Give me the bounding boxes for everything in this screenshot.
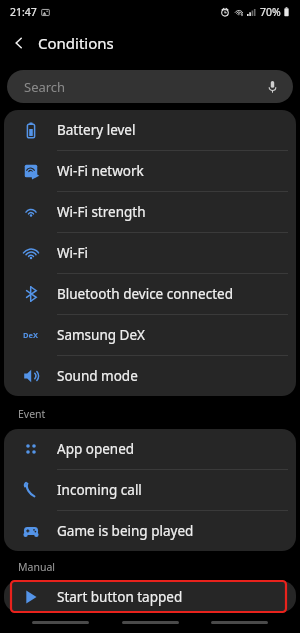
- staticText: Sound mode: [57, 367, 138, 385]
- button[interactable]: Navigation: [32, 621, 89, 624]
- button[interactable]: Navigation: [211, 621, 268, 624]
- staticText: Incoming call: [57, 481, 142, 499]
- button[interactable]: Wi-Fi strength: [4, 192, 296, 232]
- staticText: Bluetooth device connected: [57, 285, 233, 303]
- button[interactable]: Incoming call: [4, 470, 296, 510]
- staticText: Battery level: [57, 121, 136, 139]
- staticText: App opened: [57, 440, 135, 458]
- staticText: Game is being played: [57, 522, 194, 540]
- button[interactable]: Sound mode: [4, 356, 296, 396]
- button[interactable]: Search: [7, 70, 293, 103]
- button[interactable]: DeX: [4, 315, 296, 355]
- button[interactable]: Bluetooth device connected: [4, 274, 296, 314]
- staticText: Search: [24, 78, 66, 96]
- staticText: Wi-Fi: [57, 244, 88, 262]
- staticText: Manual: [18, 560, 55, 574]
- button[interactable]: Battery level: [4, 110, 296, 150]
- staticText: Start button tapped: [57, 588, 183, 606]
- staticText: Samsung DeX: [57, 326, 145, 344]
- staticText: Wi-Fi strength: [57, 203, 146, 221]
- staticText: Event: [18, 407, 46, 421]
- button[interactable]: App opened: [4, 429, 296, 469]
- button[interactable]: Navigation: [122, 621, 179, 624]
- staticText: Wi-Fi network: [57, 162, 144, 180]
- button[interactable]: Wi-Fi network: [4, 151, 296, 191]
- staticText: DeX: [23, 330, 38, 340]
- staticText: 21:47: [10, 5, 37, 19]
- staticText: 70%: [260, 5, 281, 19]
- staticText: Conditions: [38, 33, 114, 53]
- button[interactable]: Start button tapped: [4, 581, 296, 612]
- button[interactable]: Back: [0, 24, 38, 62]
- button[interactable]: Game is being played: [4, 511, 296, 551]
- button[interactable]: Wi-Fi: [4, 233, 296, 273]
